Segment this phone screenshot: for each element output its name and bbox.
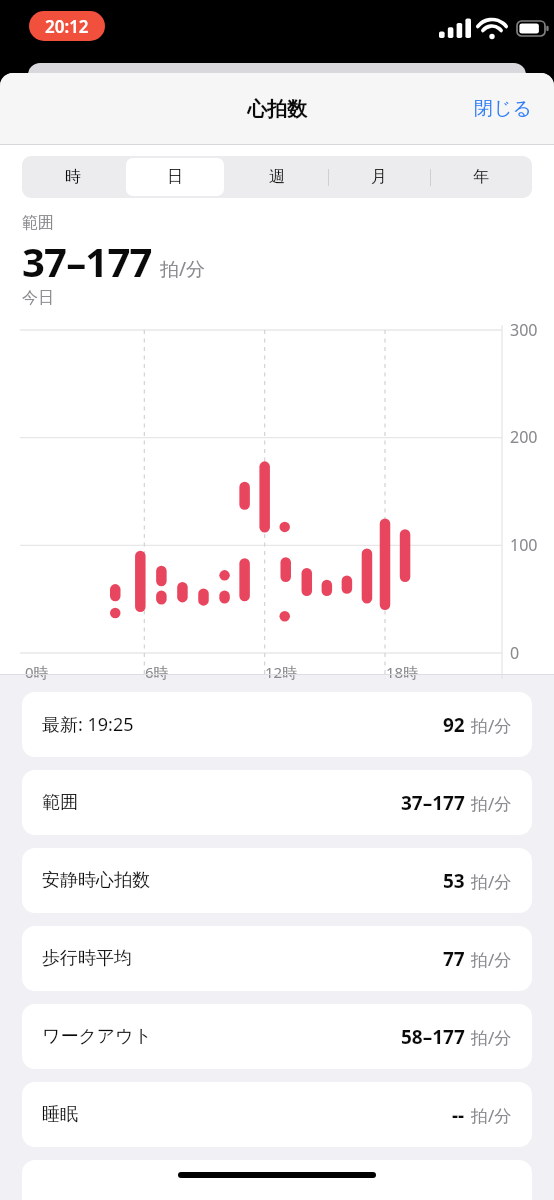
button[interactable]: 歩行時平均 [22,926,532,991]
staticText: 77 [443,946,465,972]
staticText: 92 [443,712,465,738]
staticText: 12時 [265,662,298,682]
staticText: 最新: 19:25 [42,712,134,737]
staticText: 拍/分 [471,792,512,815]
staticText: 300 [510,319,538,341]
staticText: 月 [371,167,387,187]
button[interactable]: 月 [328,156,430,198]
staticText: 週 [269,167,285,187]
staticText: 6時 [145,662,169,682]
button[interactable] [22,1160,532,1200]
staticText: 年 [473,167,489,187]
staticText: 閉じる [474,97,532,121]
staticText: 53 [443,868,465,894]
staticText: 20:12 [45,15,89,38]
staticText: 範囲 [42,791,78,814]
staticText: 拍/分 [471,870,512,893]
button[interactable]: 閉じる [452,82,554,136]
staticText: 範囲 [22,213,54,233]
staticText: 100 [510,534,538,556]
staticText: 安静時心拍数 [42,869,150,892]
staticText: 拍/分 [471,948,512,971]
staticText: 日 [167,167,183,187]
staticText: 18時 [386,662,419,682]
staticText: 58–177 [401,1024,465,1050]
staticText: 37–177 [401,790,465,816]
staticText: 拍/分 [471,714,512,737]
staticText: 0 [510,642,520,664]
staticText: 37–177 [22,234,152,288]
staticText: 時 [65,167,81,187]
button[interactable]: 週 [226,156,328,198]
staticText: 睡眠 [42,1103,78,1126]
staticText: 心拍数 [247,97,307,122]
button[interactable]: 時 [22,156,124,198]
staticText: 0時 [25,662,49,682]
staticText: 200 [510,426,538,448]
staticText: 歩行時平均 [42,947,132,970]
button[interactable]: 睡眠 [22,1082,532,1147]
button[interactable]: 安静時心拍数 [22,848,532,913]
staticText: 今日 [22,288,54,308]
staticText: ワークアウト [42,1025,153,1048]
button[interactable]: 日 [124,156,226,198]
other: Home indicator [178,1172,376,1178]
button[interactable]: ワークアウト [22,1004,532,1069]
button[interactable]: 年 [430,156,532,198]
button[interactable]: 範囲 [22,770,532,835]
staticText: -- [452,1102,465,1128]
staticText: 拍/分 [160,256,206,282]
staticText: 拍/分 [471,1104,512,1127]
button[interactable]: 最新: 19:25 [22,692,532,757]
staticText: 拍/分 [471,1026,512,1049]
